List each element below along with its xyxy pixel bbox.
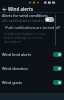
- button[interactable]: Toggle on: [53, 52, 62, 57]
- staticText: Wind alerts: [8, 6, 33, 12]
- staticText: Wind direction: [2, 66, 53, 71]
- staticText: Alerts for wind conditions: [2, 13, 48, 18]
- staticText: Enable notifications in your: [4, 31, 47, 35]
- staticText: wind alerts: [4, 39, 22, 43]
- button[interactable]: Wind limit alerts: [0, 48, 64, 60]
- button[interactable]: Back: [0, 5, 8, 13]
- button[interactable]: Wind gusts: [0, 76, 64, 88]
- staticText: Wind limit alerts: [2, 52, 53, 57]
- staticText: device settings to receive: [4, 35, 43, 39]
- button[interactable]: Toggle off: [45, 17, 54, 22]
- button[interactable]: Toggle on: [53, 66, 62, 71]
- staticText: Push notifications are turned off: [5, 25, 60, 30]
- button[interactable]: Toggle on: [53, 80, 62, 85]
- staticText: Get notified when wind is strong: [2, 18, 56, 23]
- button[interactable]: Wind direction: [0, 62, 64, 74]
- staticText: Wind gusts: [2, 80, 53, 85]
